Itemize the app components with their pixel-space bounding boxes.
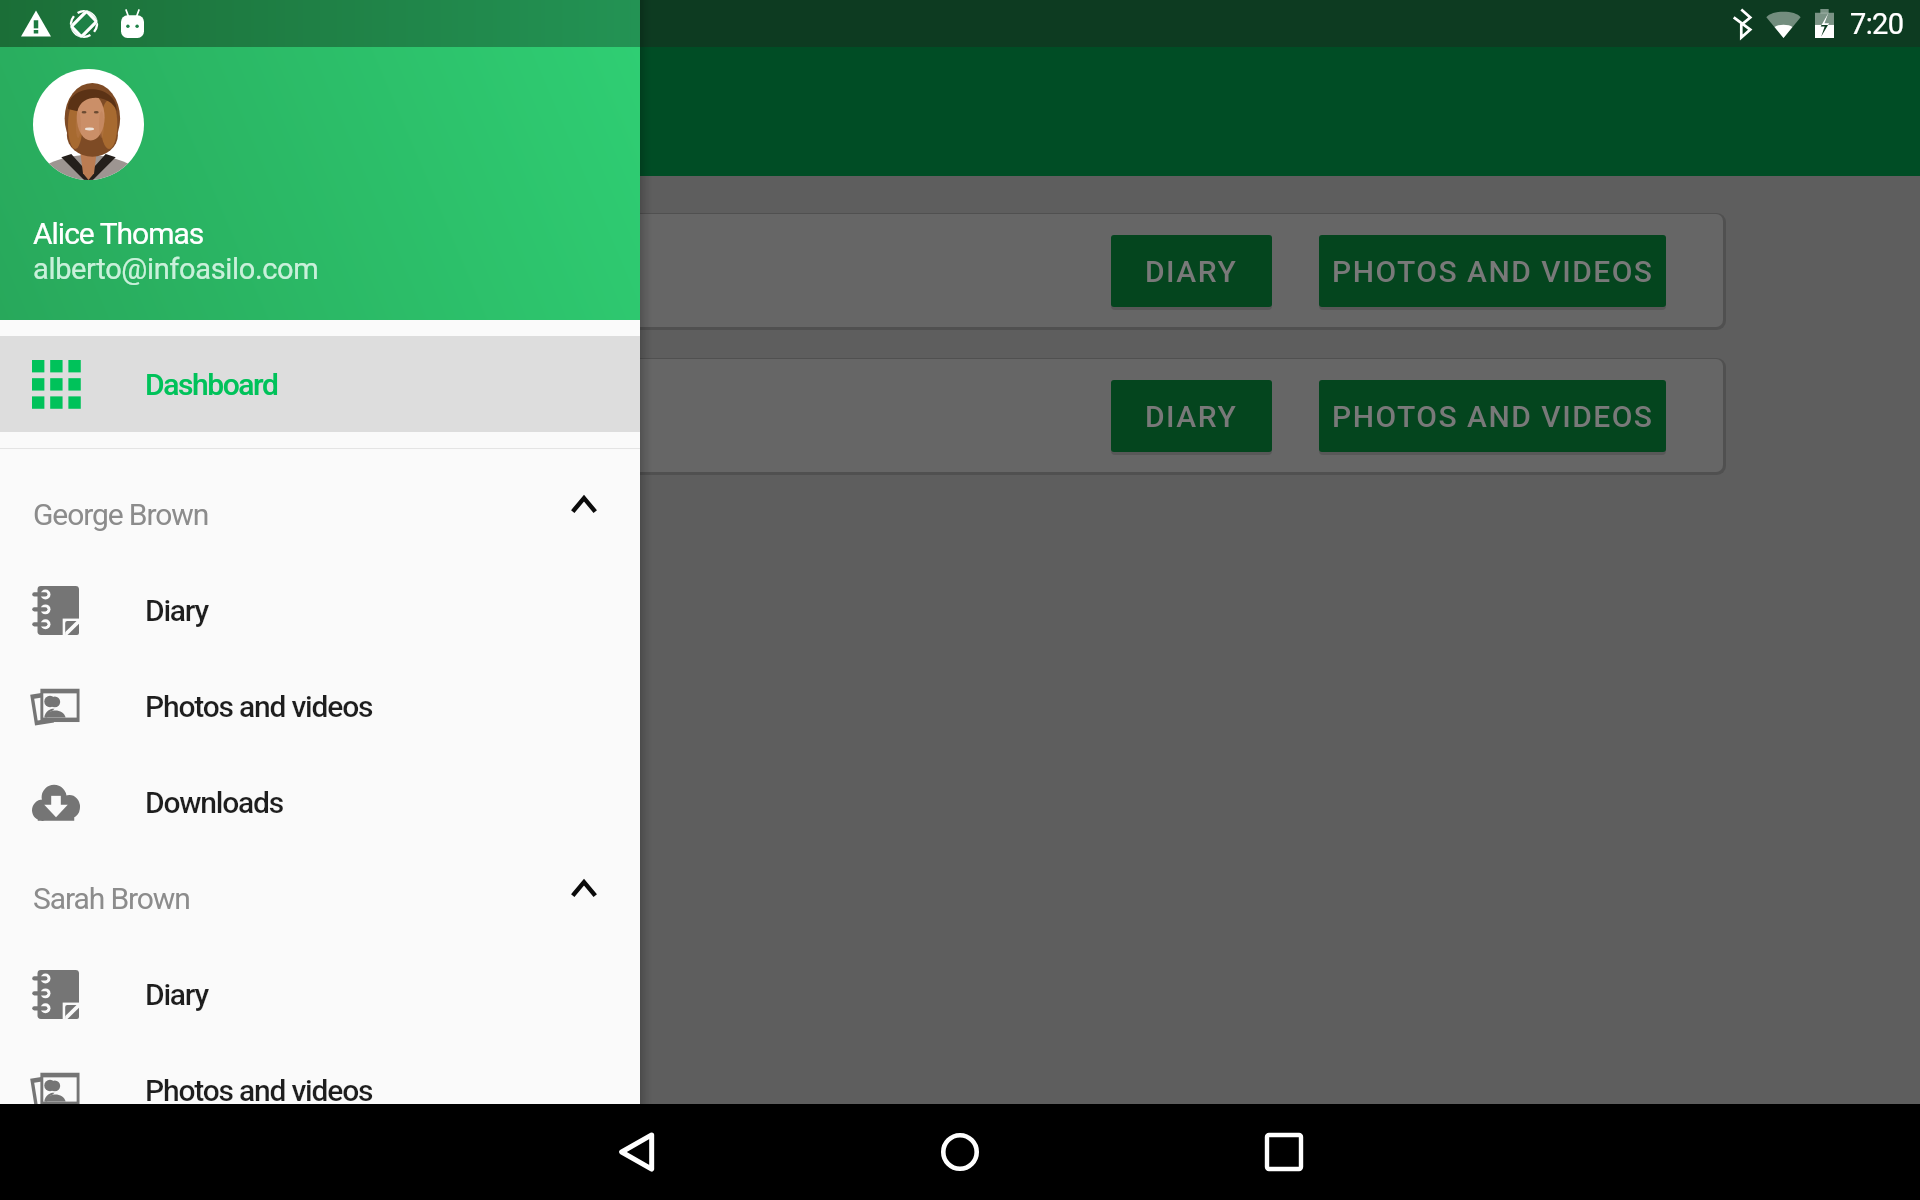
button[interactable]: Diary: [0, 562, 640, 658]
staticText: Diary: [145, 977, 208, 1012]
other: Collapse: [572, 880, 596, 896]
staticText: Photos and videos: [145, 1073, 373, 1108]
staticText: alberto@infoasilo.com: [33, 252, 319, 286]
button[interactable]: Home: [912, 1104, 1008, 1200]
button[interactable]: Downloads: [0, 754, 640, 850]
staticText: Photos and videos: [145, 689, 373, 724]
staticText: DIARY: [1145, 399, 1238, 434]
button[interactable]: Dashboard: [0, 336, 640, 432]
staticText: 7:20: [1850, 7, 1904, 41]
staticText: Diary: [145, 593, 208, 628]
button[interactable]: Back: [588, 1104, 684, 1200]
staticText: PHOTOS AND VIDEOS: [1332, 254, 1654, 289]
button[interactable]: Recents: [1236, 1104, 1332, 1200]
button[interactable]: PHOTOS AND VIDEOS: [1319, 380, 1666, 452]
button[interactable]: Sarah Brown: [0, 850, 640, 946]
staticText: George Brown: [33, 497, 209, 532]
staticText: Downloads: [145, 785, 283, 820]
staticText: Dashboard: [145, 367, 278, 402]
staticText: DIARY: [1145, 254, 1238, 289]
button[interactable]: PHOTOS AND VIDEOS: [1319, 235, 1666, 307]
button[interactable]: George Brown: [0, 466, 640, 562]
other: Collapse: [572, 496, 596, 512]
button[interactable]: DIARY: [1111, 380, 1272, 452]
staticText: Alice Thomas: [33, 216, 204, 251]
button[interactable]: DIARY: [1111, 235, 1272, 307]
button[interactable]: Photos and videos: [0, 1042, 640, 1138]
button[interactable]: Photos and videos: [0, 658, 640, 754]
staticText: PHOTOS AND VIDEOS: [1332, 399, 1654, 434]
button[interactable]: Diary: [0, 946, 640, 1042]
staticText: Sarah Brown: [33, 881, 190, 916]
